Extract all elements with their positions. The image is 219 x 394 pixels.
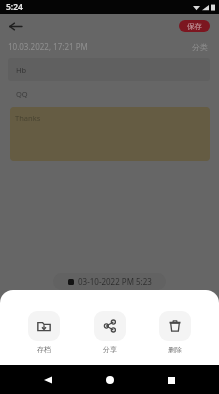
staticText: 03-10-2022 PM 5:23 xyxy=(78,276,152,287)
staticText: 存档 xyxy=(37,345,51,354)
staticText: Hb xyxy=(16,65,27,75)
button[interactable]: 保存 xyxy=(179,20,210,32)
staticText: 10.03.2022, 17:21 PM xyxy=(8,41,88,52)
staticText: 5:24 xyxy=(6,1,23,13)
staticText: 删除 xyxy=(168,345,182,354)
staticText: 保存 xyxy=(187,22,202,31)
button[interactable]: Back xyxy=(38,370,58,390)
staticText: QQ xyxy=(16,89,28,99)
button[interactable]: Home xyxy=(100,370,120,390)
button[interactable]: 分类 xyxy=(192,42,208,52)
button[interactable]: Back xyxy=(6,17,24,35)
button[interactable]: 删除 xyxy=(159,311,191,354)
button[interactable]: 分享 xyxy=(94,311,126,354)
button[interactable]: Recent apps xyxy=(161,370,181,390)
staticText: Thanks xyxy=(15,113,41,123)
staticText: 分享 xyxy=(103,345,117,354)
button[interactable]: 存档 xyxy=(28,311,60,354)
button[interactable]: 03-10-2022 PM 5:23 xyxy=(53,273,166,290)
